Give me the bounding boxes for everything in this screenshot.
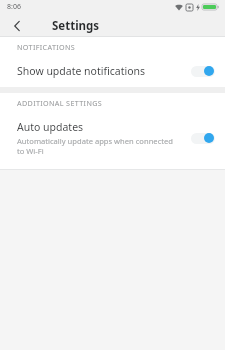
button[interactable]: Auto updates [0,113,225,165]
staticText: 8:06 [7,2,21,12]
staticText: NOTIFICATIONS [17,42,76,52]
staticText: Show update notifications [17,64,146,78]
staticText: Automatically update apps when connected… [17,136,182,156]
button[interactable]: Toggle [190,131,215,145]
button[interactable]: Back [6,15,28,37]
staticText: Auto updates [17,120,84,134]
button[interactable]: Toggle [190,64,215,78]
button[interactable]: Show update notifications [0,57,225,87]
staticText: Settings [52,18,100,34]
staticText: ADDITIONAL SETTINGS [17,98,103,108]
